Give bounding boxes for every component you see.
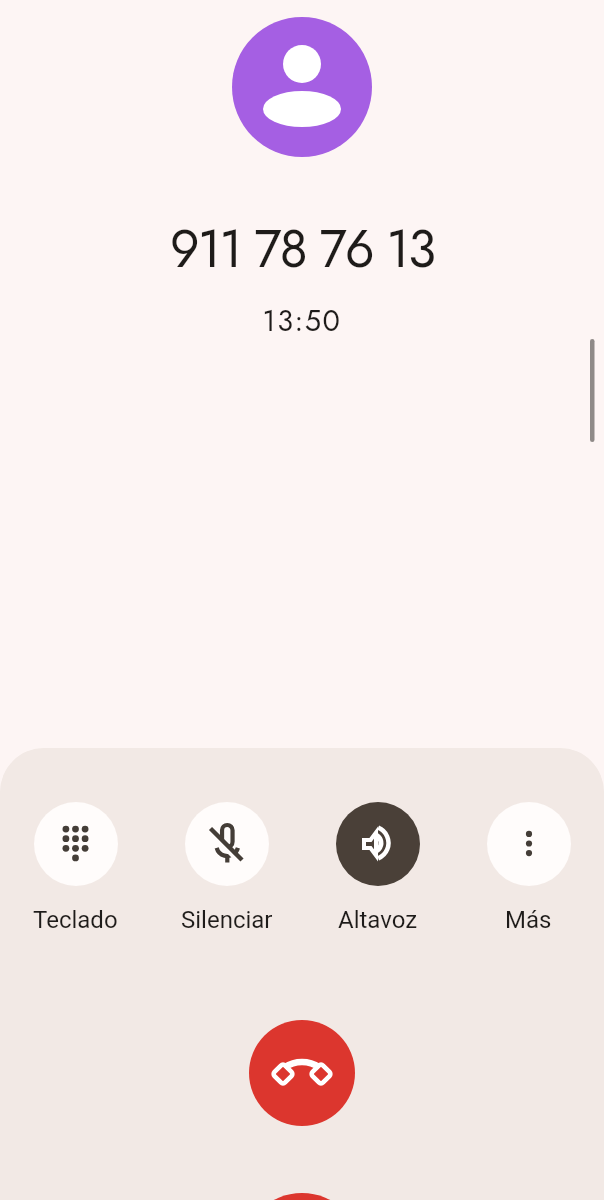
- staticText: 911 78 76 13: [0, 211, 604, 286]
- button[interactable]: Más: [453, 802, 604, 934]
- staticText: Más: [505, 906, 552, 934]
- button[interactable]: Altavoz: [302, 802, 453, 934]
- button[interactable]: [249, 1020, 355, 1126]
- staticText: Silenciar: [181, 906, 273, 934]
- button[interactable]: Teclado: [0, 802, 151, 934]
- button[interactable]: Silenciar: [151, 802, 302, 934]
- staticText: 13:50: [0, 300, 604, 342]
- staticText: Teclado: [33, 906, 118, 934]
- staticText: Altavoz: [338, 906, 418, 934]
